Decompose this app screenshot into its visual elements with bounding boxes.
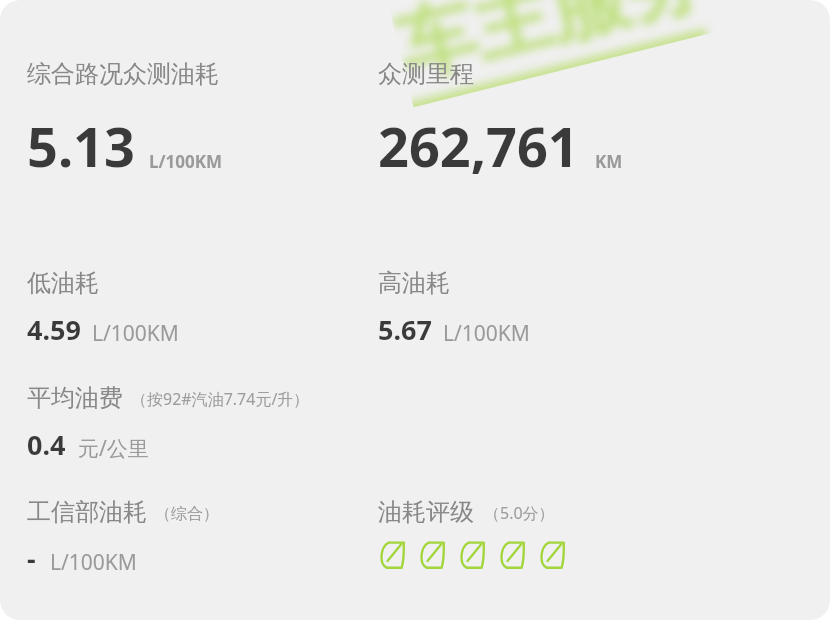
staticText: 工信部油耗 [27, 497, 147, 527]
staticText: 综合路况众测油耗 [27, 59, 219, 89]
other: Fuel economy rating leaf [378, 539, 406, 575]
button[interactable]: 低油耗 [27, 268, 179, 348]
staticText: 油耗评级 [378, 497, 474, 527]
staticText: 262,761 [378, 109, 579, 183]
staticText: L/100KM [92, 319, 179, 348]
button[interactable]: 高油耗 [378, 268, 530, 348]
button[interactable]: 综合路况众测油耗 [27, 59, 223, 183]
button[interactable]: 油耗评级 [378, 497, 578, 575]
staticText: L/100KM [50, 548, 137, 577]
other: Fuel economy rating leaf [418, 539, 446, 575]
button[interactable]: 工信部油耗 [27, 497, 219, 577]
other: Fuel economy rating leaf [538, 539, 566, 575]
button[interactable]: 众测里程 [378, 59, 623, 183]
staticText: 众测里程 [378, 59, 474, 89]
staticText: KM [595, 150, 623, 173]
staticText: L/100KM [443, 319, 530, 348]
staticText: 5.13 [27, 109, 135, 183]
staticText: 元/公里 [78, 434, 149, 463]
staticText: 车主服务 [388, 0, 714, 98]
other: Fuel economy rating leaf [458, 539, 486, 575]
button[interactable]: 平均油费 [27, 383, 310, 463]
staticText: 平均油费 [27, 383, 123, 413]
staticText: 0.4 [27, 426, 66, 463]
staticText: 低油耗 [27, 268, 99, 298]
staticText: （综合） [155, 504, 219, 524]
staticText: - [27, 540, 36, 577]
other: Fuel economy rating leaf [498, 539, 526, 575]
staticText: （按92#汽油7.74元/升） [131, 388, 310, 410]
staticText: L/100KM [149, 150, 223, 173]
staticText: 5.67 [378, 311, 432, 348]
staticText: （5.0分） [484, 502, 555, 524]
staticText: 高油耗 [378, 268, 450, 298]
staticText: 4.59 [27, 311, 81, 348]
